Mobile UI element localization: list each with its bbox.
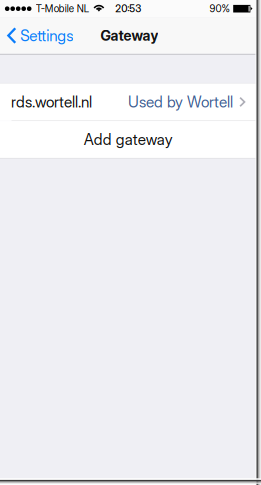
staticText: Add gateway bbox=[84, 130, 173, 149]
staticText: Used by Wortell bbox=[128, 93, 233, 111]
staticText: Gateway bbox=[100, 27, 158, 44]
button[interactable]: Settings bbox=[0, 17, 81, 54]
staticText: T-Mobile NL bbox=[36, 3, 89, 15]
button[interactable]: Add gateway bbox=[0, 121, 256, 158]
staticText: rds.wortell.nl bbox=[11, 93, 92, 111]
staticText: Settings bbox=[20, 26, 73, 45]
button[interactable]: rds.wortell.nl bbox=[0, 83, 256, 120]
staticText: 90% bbox=[210, 3, 230, 15]
staticText: 20:53 bbox=[115, 3, 141, 15]
